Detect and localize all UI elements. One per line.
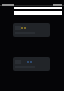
button[interactable] — [13, 23, 50, 37]
button[interactable] — [13, 57, 50, 71]
